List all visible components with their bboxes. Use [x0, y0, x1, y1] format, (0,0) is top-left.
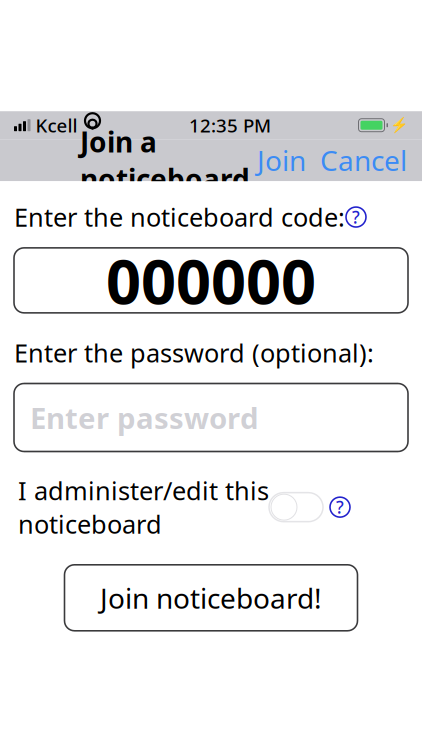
button[interactable]: 000000	[14, 248, 408, 313]
staticText: Join noticeboard!	[100, 579, 322, 616]
staticText: ⚡	[390, 117, 408, 134]
button[interactable]: Enter password	[14, 383, 408, 451]
button[interactable]: Join	[250, 138, 313, 183]
staticText: ?	[352, 205, 360, 228]
staticText: Cancel	[320, 142, 407, 179]
button[interactable]: Help	[345, 206, 367, 228]
staticText: I administer/edit this noticeboard	[18, 473, 269, 541]
button[interactable]: Join noticeboard!	[64, 565, 357, 631]
staticText: Enter the noticeboard code:	[14, 200, 345, 234]
staticText: ?	[336, 496, 344, 519]
staticText: 000000	[106, 240, 316, 321]
button[interactable]: Cancel	[313, 138, 414, 183]
button[interactable]: Help	[329, 496, 351, 518]
button[interactable]: I administer or edit this noticeboard	[269, 493, 323, 522]
staticText: Kcell	[35, 113, 77, 138]
staticText: Join a noticeboard	[80, 123, 250, 197]
staticText: Join	[257, 142, 306, 179]
staticText: Enter the password (optional):	[14, 336, 374, 369]
staticText: 12:35 PM	[189, 113, 271, 138]
staticText: Enter password	[30, 398, 259, 437]
